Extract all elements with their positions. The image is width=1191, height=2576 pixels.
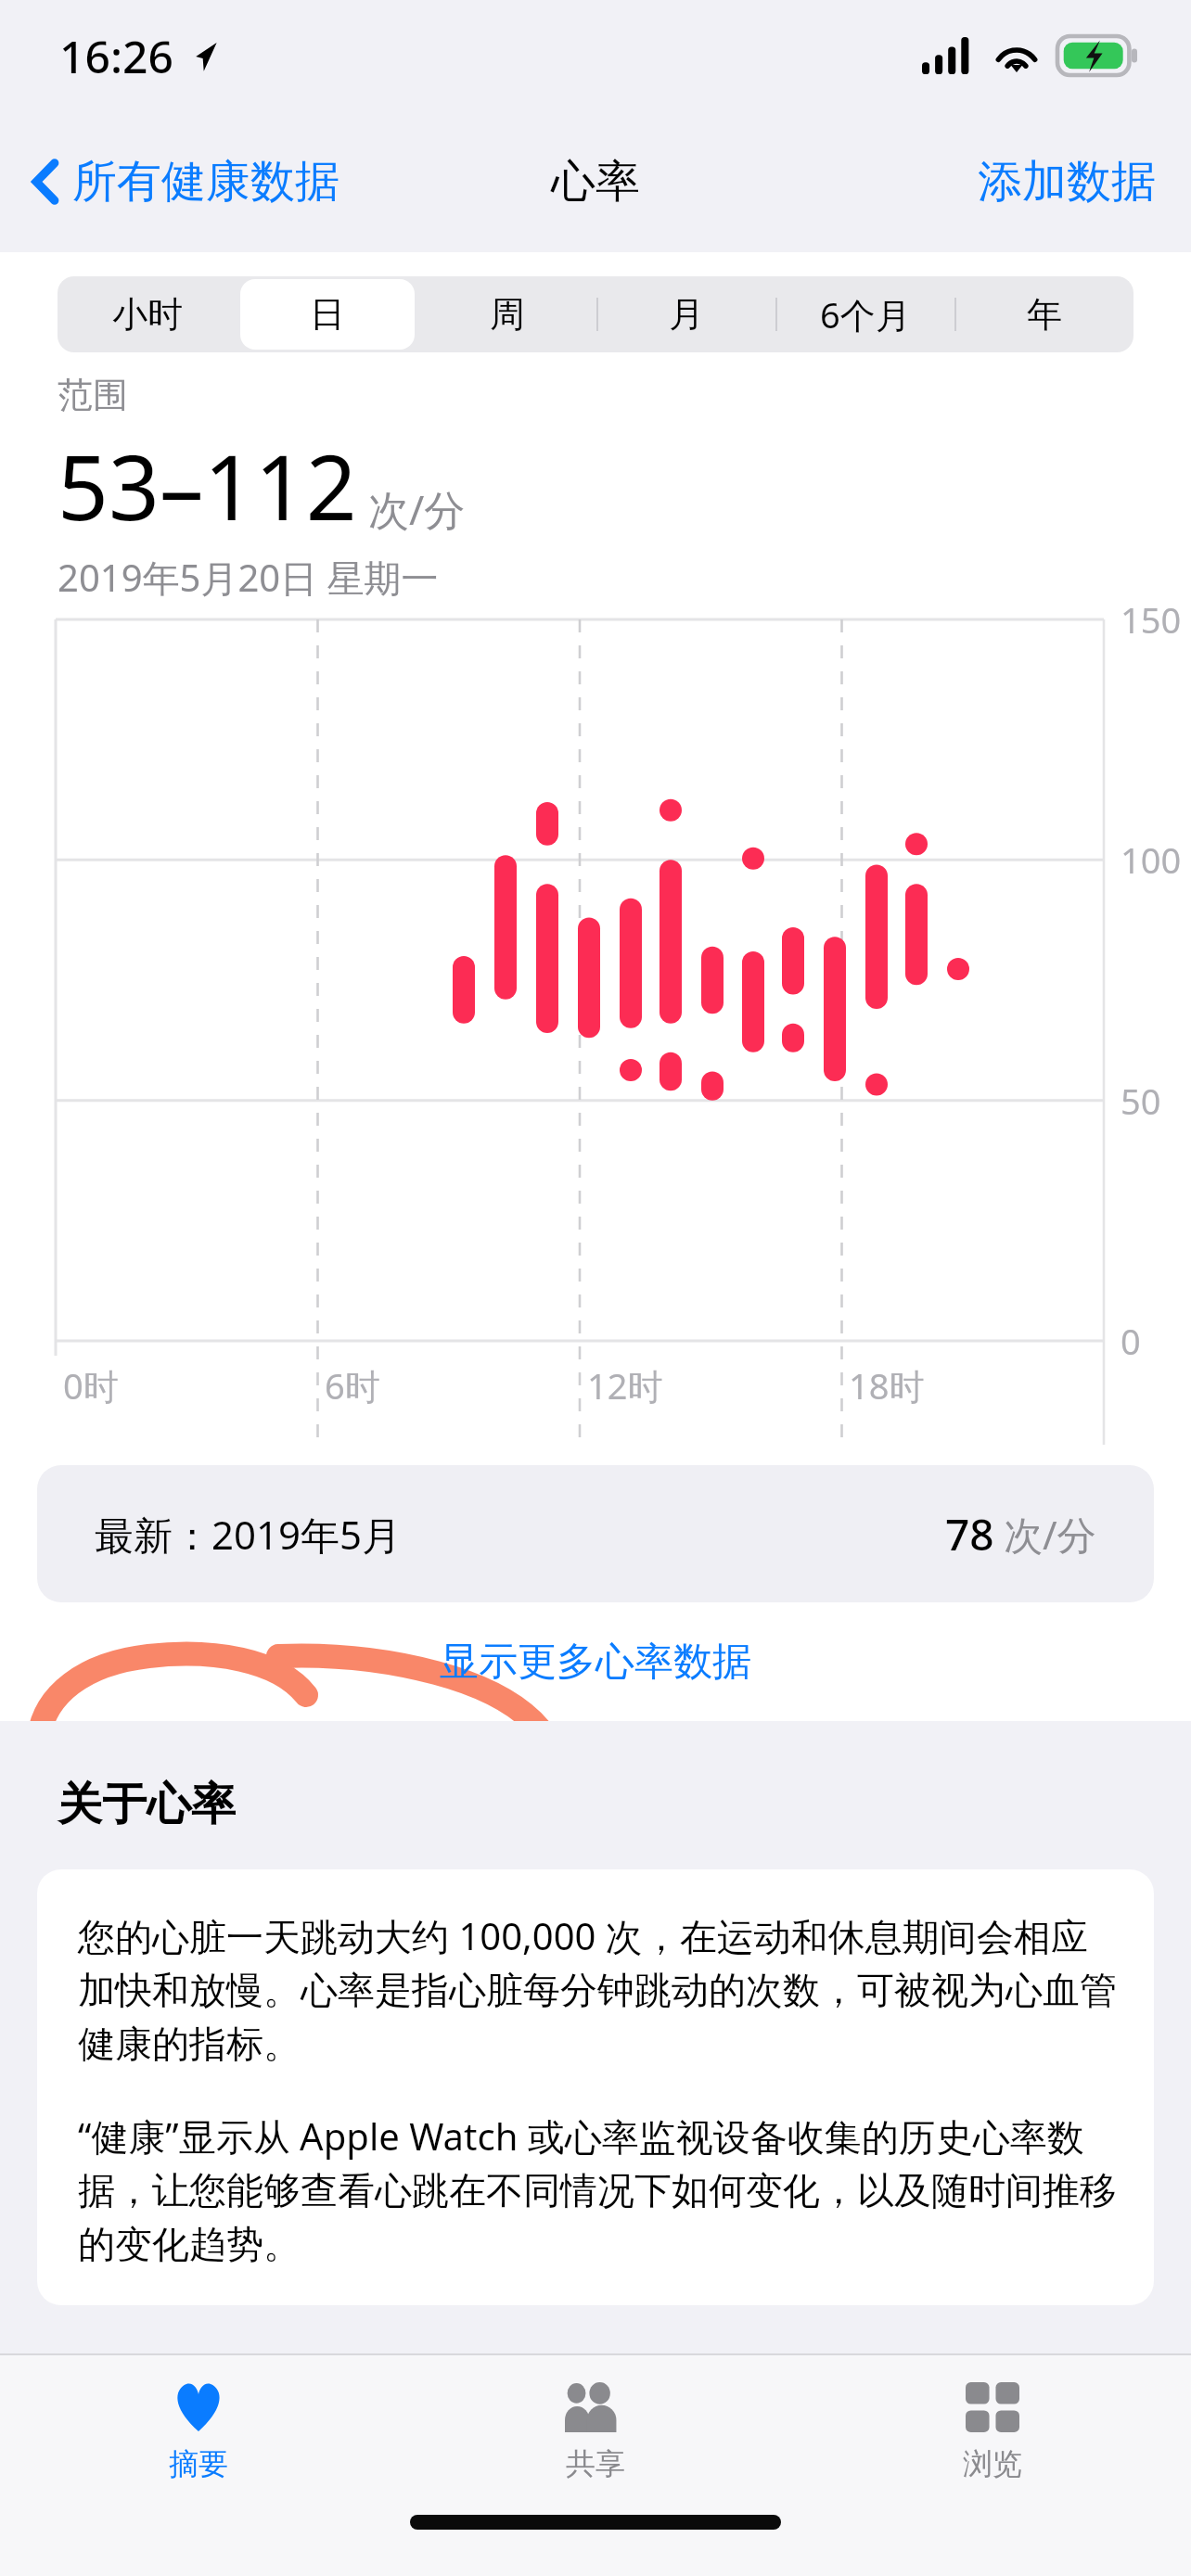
button[interactable]: 日 bbox=[237, 276, 417, 352]
staticText: 2019年5月20日 星期一 bbox=[58, 552, 439, 603]
button[interactable]: 浏览 bbox=[794, 2355, 1191, 2504]
staticText: 78 bbox=[945, 1505, 994, 1563]
staticText: “健康”显示从 Apple Watch 或心率监视设备收集的历史心率数据，让您能… bbox=[78, 2111, 1121, 2268]
staticText: 所有健康数据 bbox=[72, 154, 339, 210]
staticText: 心率 bbox=[551, 154, 640, 210]
button[interactable]: 添加数据 bbox=[942, 134, 1191, 230]
button[interactable]: 周 bbox=[417, 276, 596, 352]
staticText: 53–112 bbox=[58, 425, 357, 546]
button[interactable]: 小时 bbox=[58, 276, 237, 352]
staticText: 6个月 bbox=[820, 290, 911, 338]
staticText: 0时 bbox=[63, 1361, 119, 1409]
staticText: 日 bbox=[310, 292, 345, 337]
staticText: 浏览 bbox=[963, 2445, 1022, 2482]
button[interactable]: 摘要 bbox=[0, 2355, 397, 2504]
staticText: 共享 bbox=[566, 2445, 625, 2482]
button[interactable]: 共享 bbox=[397, 2355, 794, 2504]
staticText: 月 bbox=[669, 292, 704, 337]
staticText: 18时 bbox=[849, 1361, 925, 1409]
staticText: 摘要 bbox=[169, 2445, 228, 2482]
staticText: 12时 bbox=[587, 1361, 663, 1409]
button[interactable]: 最新：2019年5月 bbox=[37, 1465, 1154, 1602]
staticText: 范围 bbox=[58, 373, 128, 417]
button[interactable]: 6个月 bbox=[775, 276, 954, 352]
button[interactable]: 所有健康数据 bbox=[0, 135, 354, 228]
staticText: 关于心率 bbox=[58, 1777, 236, 1832]
staticText: 年 bbox=[1027, 292, 1062, 337]
staticText: 150 bbox=[1121, 595, 1182, 644]
staticText: 6时 bbox=[325, 1361, 380, 1409]
staticText: 小时 bbox=[112, 292, 183, 337]
staticText: 50 bbox=[1121, 1077, 1161, 1125]
staticText: 16:26 bbox=[59, 26, 173, 86]
staticText: 100 bbox=[1121, 835, 1182, 884]
button[interactable]: 显示更多心率数据 bbox=[412, 1621, 779, 1703]
staticText: 次/分 bbox=[368, 481, 466, 537]
staticText: 最新：2019年5月 bbox=[95, 1508, 402, 1561]
staticText: 0 bbox=[1121, 1317, 1141, 1365]
staticText: 周 bbox=[490, 292, 525, 337]
staticText: 您的心脏一天跳动大约 100,000 次，在运动和休息期间会相应加快和放慢。心率… bbox=[78, 1910, 1121, 2068]
button[interactable]: 月 bbox=[596, 276, 775, 352]
button[interactable]: 年 bbox=[954, 276, 1133, 352]
staticText: 次/分 bbox=[1004, 1508, 1096, 1561]
